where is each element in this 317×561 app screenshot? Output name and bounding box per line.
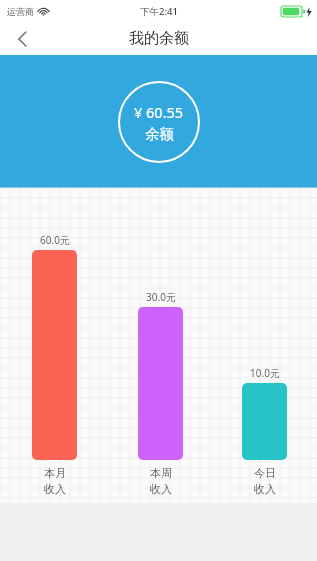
staticText: 收入 [44,482,66,496]
button[interactable]: Back [0,22,44,55]
staticText: 本月 [44,466,66,480]
staticText: 60.0元 [40,233,70,247]
staticText: 运营商 [7,6,34,17]
button[interactable] [32,250,77,460]
staticText: 本周 [150,466,172,480]
button[interactable] [138,307,183,460]
staticText: 30.0元 [146,290,176,304]
staticText: 收入 [150,482,172,496]
staticText: 今日 [254,466,276,480]
staticText: 收入 [254,482,276,496]
staticText: 余额 [145,125,174,143]
staticText: 我的余额 [129,29,189,48]
staticText: ¥ 60.55 [134,102,184,122]
button[interactable] [242,383,287,460]
button[interactable]: ¥ 60.55 [118,81,200,163]
staticText: 10.0元 [250,366,280,380]
staticText: 下午2:41 [140,5,178,18]
